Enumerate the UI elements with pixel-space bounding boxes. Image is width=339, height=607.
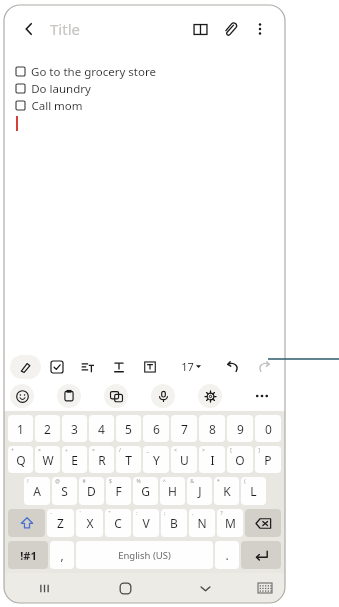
button[interactable]: Settings <box>198 384 222 408</box>
staticText: Go to the grocery store <box>31 64 156 80</box>
button[interactable]: × <box>35 446 60 473</box>
button[interactable]: Translate <box>104 384 128 408</box>
staticText: Title <box>50 19 80 39</box>
staticText: B <box>170 515 178 531</box>
staticText: K <box>223 483 231 499</box>
button[interactable]: Redo <box>248 355 279 379</box>
button[interactable]: # <box>79 477 104 505</box>
button[interactable]: More options <box>245 14 275 44</box>
staticText: G <box>141 483 150 499</box>
staticText: , <box>60 547 64 563</box>
button[interactable]: ' <box>76 509 103 537</box>
button[interactable]: Enter <box>241 541 281 569</box>
button[interactable]: Call mom <box>16 97 285 114</box>
button[interactable]: 17 <box>165 352 217 381</box>
button[interactable]: Voice input <box>151 384 175 408</box>
staticText: 1 <box>17 421 24 437</box>
button[interactable]: Reading mode <box>185 14 215 44</box>
button[interactable]: + <box>8 446 33 473</box>
button[interactable]: ; <box>161 509 187 537</box>
button[interactable]: ] <box>255 446 281 473</box>
button[interactable]: " <box>105 509 131 537</box>
button[interactable]: Text format <box>103 355 134 379</box>
button[interactable]: Recents <box>4 573 85 603</box>
button[interactable]: @ <box>52 477 77 505</box>
button[interactable]: Title <box>50 5 185 53</box>
button[interactable]: . <box>215 541 239 569</box>
button[interactable]: , <box>50 541 74 569</box>
button[interactable]: Paragraph <box>72 355 103 379</box>
button[interactable]: 6 <box>143 415 169 442</box>
button[interactable]: 4 <box>89 415 114 442</box>
button[interactable]: = <box>89 446 114 473</box>
staticText: ? <box>220 510 223 517</box>
button[interactable]: Backspace <box>245 509 281 537</box>
staticText: * <box>217 478 220 485</box>
button[interactable]: 3 <box>62 415 87 442</box>
staticText: A <box>33 483 41 499</box>
staticText: > <box>202 447 205 454</box>
button[interactable]: * <box>214 477 239 505</box>
button[interactable]: 9 <box>227 415 253 442</box>
button[interactable]: 1 <box>8 415 33 442</box>
button[interactable]: _ <box>143 446 169 473</box>
staticText: 17 <box>181 359 194 374</box>
button[interactable]: 7 <box>171 415 197 442</box>
staticText: 5 <box>125 421 132 437</box>
button[interactable]: Checklist <box>41 355 72 379</box>
button[interactable]: - <box>47 509 74 537</box>
button[interactable]: & <box>187 477 212 505</box>
button[interactable]: [ <box>227 446 253 473</box>
staticText: - <box>50 510 52 517</box>
button[interactable]: Shift <box>8 509 45 537</box>
button[interactable]: > <box>199 446 225 473</box>
button[interactable]: 0 <box>255 415 281 442</box>
button[interactable]: $ <box>106 477 131 505</box>
staticText: . <box>225 547 229 563</box>
button[interactable]: ÷ <box>62 446 87 473</box>
button[interactable]: ? <box>217 509 243 537</box>
button[interactable]: , <box>189 509 215 537</box>
staticText: % <box>136 478 141 485</box>
staticText: T <box>125 452 132 468</box>
staticText: , <box>192 510 194 517</box>
button[interactable]: ^ <box>160 477 185 505</box>
button[interactable]: Home <box>85 573 165 603</box>
staticText: 4 <box>98 421 105 437</box>
button[interactable]: Do laundry <box>16 80 285 97</box>
staticText: ' <box>79 510 81 517</box>
staticText: L <box>250 483 257 499</box>
button[interactable]: ! <box>24 477 50 505</box>
button[interactable]: Text box <box>134 355 165 379</box>
button[interactable]: Emoji <box>10 384 34 408</box>
staticText: # <box>82 478 86 485</box>
button[interactable]: < <box>171 446 197 473</box>
staticText: + <box>11 447 14 454</box>
button[interactable]: Clipboard <box>57 384 81 408</box>
button[interactable]: 8 <box>199 415 225 442</box>
staticText: 3 <box>71 421 78 437</box>
button[interactable]: Back <box>14 14 44 44</box>
button[interactable]: / <box>116 446 141 473</box>
staticText: Z <box>57 515 64 531</box>
button[interactable]: Switch keyboard <box>245 573 285 603</box>
button[interactable]: Attach <box>215 14 245 44</box>
button[interactable]: Hide keyboard <box>165 573 245 603</box>
button[interactable]: : <box>133 509 159 537</box>
button[interactable]: !#1 <box>8 541 48 569</box>
button[interactable]: Go to the grocery store <box>16 63 285 80</box>
staticText: 8 <box>209 421 216 437</box>
button[interactable]: ( <box>241 477 266 505</box>
button[interactable]: 5 <box>116 415 141 442</box>
button[interactable]: 2 <box>35 415 60 442</box>
staticText: ( <box>244 478 246 485</box>
staticText: H <box>168 483 177 499</box>
staticText: " <box>108 510 111 517</box>
button[interactable]: English (US) <box>76 541 213 569</box>
staticText: Call mom <box>31 98 83 114</box>
button[interactable]: More <box>245 381 279 411</box>
button[interactable]: Undo <box>217 355 248 379</box>
staticText: 2 <box>44 421 51 437</box>
button[interactable]: Pen <box>10 355 41 379</box>
button[interactable]: % <box>133 477 158 505</box>
